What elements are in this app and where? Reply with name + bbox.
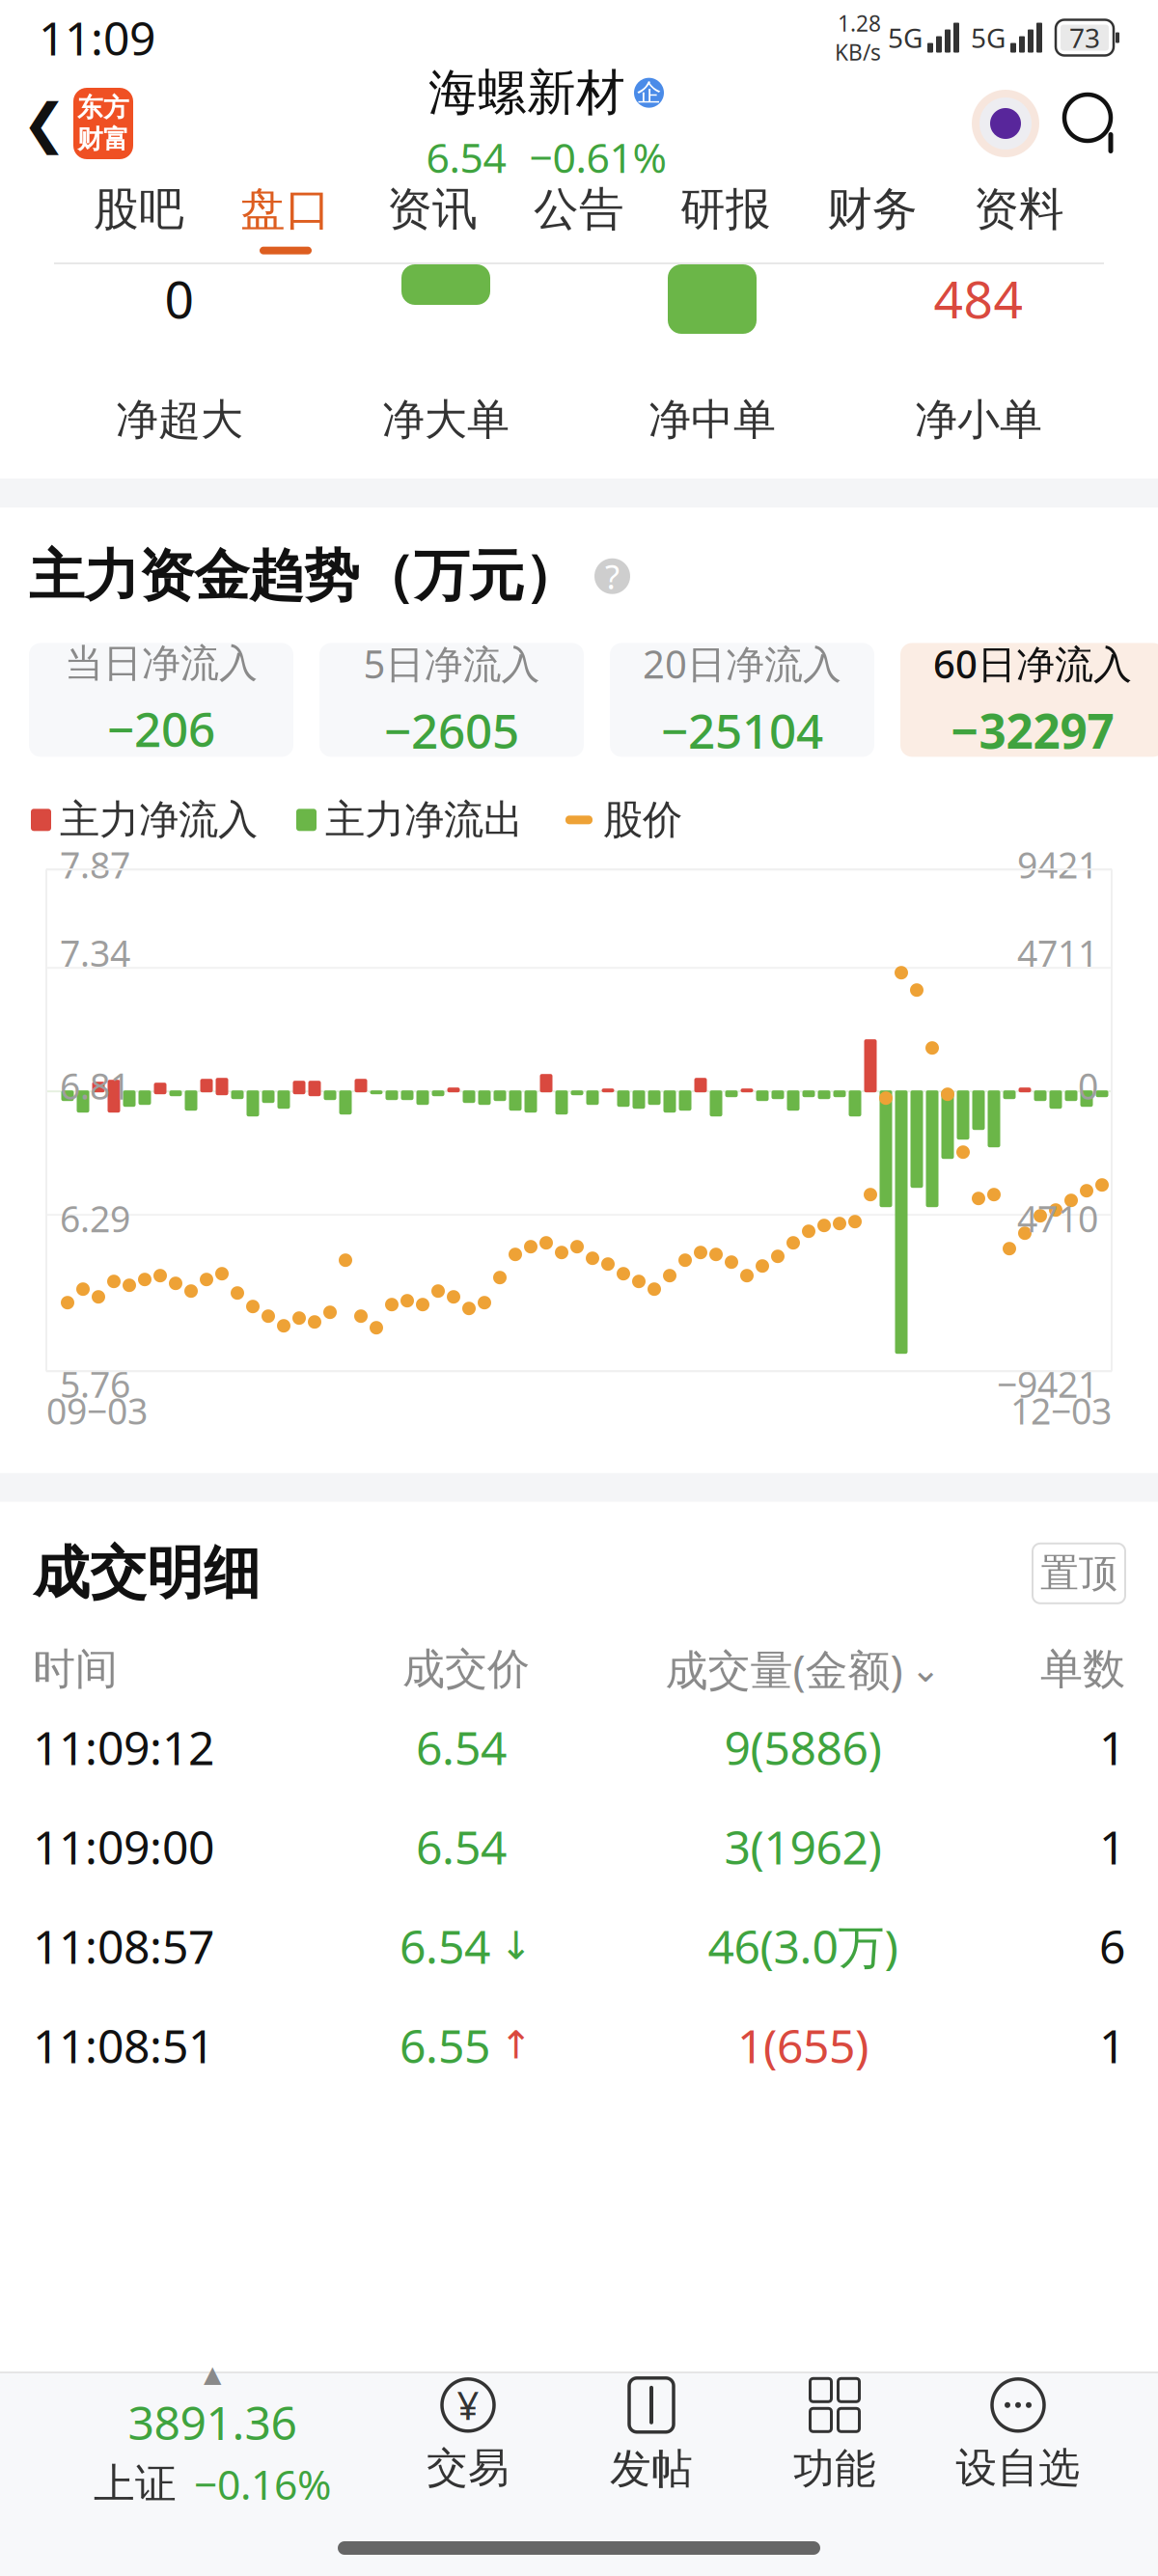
button[interactable]: 11:08:57 — [0, 1896, 1158, 1995]
staticText: ↓ — [500, 1924, 533, 1968]
staticText: 盘口 — [240, 182, 331, 237]
staticText: ❮ — [22, 93, 67, 154]
button[interactable]: 60日净流入 — [900, 643, 1158, 757]
button[interactable]: 成交量(金额) — [658, 1641, 948, 1697]
staticText: 484 — [934, 264, 1023, 333]
staticText: 财务 — [827, 182, 918, 237]
button[interactable]: 股吧 — [66, 172, 212, 264]
button[interactable]: 置顶 — [1033, 1543, 1125, 1603]
staticText: 12−03 — [1010, 1387, 1112, 1434]
staticText: 1(655) — [737, 2014, 868, 2076]
staticText: 09−03 — [46, 1387, 148, 1434]
button[interactable]: 公告 — [506, 172, 652, 264]
button[interactable]: 财务 — [799, 172, 946, 264]
button[interactable]: 5日净流入 — [319, 643, 584, 757]
staticText: 3(1962) — [724, 1816, 882, 1877]
staticText: 6 — [1099, 1915, 1125, 1976]
staticText: 20日净流入 — [643, 638, 841, 689]
staticText: 5G — [888, 20, 923, 56]
staticText: ¥ — [457, 2379, 479, 2431]
staticText: 研报 — [680, 182, 771, 237]
staticText: 发帖 — [610, 2444, 693, 2494]
staticText: −0.61% — [529, 130, 666, 184]
staticText: 73 — [1069, 20, 1100, 56]
staticText: 46(3.0万) — [708, 1915, 898, 1976]
button[interactable]: 设自选 — [926, 2373, 1110, 2499]
staticText: 净超大 — [116, 394, 243, 446]
staticText: 企 — [637, 78, 661, 108]
staticText: −2605 — [384, 699, 519, 762]
staticText: 5日净流入 — [363, 638, 540, 689]
button[interactable]: 东方财富首页 — [73, 88, 133, 159]
staticText: 11:09:00 — [33, 1816, 214, 1877]
staticText: 7.34 — [60, 929, 130, 977]
staticText: 1 — [1099, 2014, 1125, 2076]
staticText: 置顶 — [1040, 1550, 1117, 1597]
staticText: 东方 — [77, 92, 129, 123]
button[interactable]: ¥ — [376, 2373, 560, 2499]
button[interactable]: 资料 — [946, 172, 1092, 264]
staticText: 净小单 — [915, 394, 1042, 446]
staticText: 3891.36 — [128, 2391, 297, 2453]
staticText: 6.54 — [416, 1716, 507, 1778]
button[interactable]: 研报 — [652, 172, 799, 264]
button[interactable]: 11:09:12 — [0, 1697, 1158, 1797]
staticText: 主力资金趋势（万元） — [29, 542, 579, 610]
button[interactable]: 11:08:51 — [0, 1995, 1158, 2095]
staticText: −25104 — [661, 699, 823, 762]
staticText: KB/s — [835, 38, 881, 67]
staticText: ▲ — [204, 2361, 221, 2387]
staticText: 4711 — [1017, 929, 1098, 977]
staticText: 时间 — [33, 1643, 118, 1695]
staticText: 6.54 — [416, 1816, 507, 1877]
staticText: 股价 — [603, 795, 682, 844]
button[interactable]: 智能助手 — [959, 75, 1052, 172]
staticText: ⌄ — [910, 1649, 940, 1690]
staticText: 11:08:51 — [33, 2014, 214, 2076]
staticText: 功能 — [793, 2444, 876, 2494]
staticText: 11:08:57 — [33, 1915, 214, 1976]
button[interactable]: 搜索 — [1052, 75, 1135, 172]
staticText: 5G — [971, 20, 1006, 56]
staticText: 6.54 — [400, 1915, 490, 1976]
staticText: 交易 — [427, 2443, 510, 2493]
staticText: 成交价 — [402, 1643, 530, 1695]
staticText: 9421 — [1017, 841, 1098, 888]
button[interactable]: 20日净流入 — [610, 643, 874, 757]
button[interactable]: 说明 — [594, 558, 630, 594]
button[interactable]: 返回 — [15, 75, 73, 172]
staticText: 7.87 — [60, 841, 130, 888]
staticText: −32297 — [951, 699, 1114, 762]
button[interactable]: 功能 — [743, 2373, 926, 2499]
staticText: 1 — [1099, 1716, 1125, 1778]
staticText: 资料 — [974, 182, 1064, 237]
staticText: 上证 — [94, 2459, 177, 2509]
staticText: 股吧 — [94, 182, 184, 237]
staticText: 0 — [165, 264, 194, 333]
staticText: 财富 — [77, 123, 129, 155]
staticText: 成交量(金额) — [665, 1641, 903, 1697]
staticText: 1 — [1099, 1816, 1125, 1877]
button[interactable]: 发帖 — [560, 2373, 743, 2499]
staticText: 6.54 — [426, 130, 506, 184]
button[interactable]: ▲ — [48, 2373, 376, 2499]
staticText: −206 — [107, 697, 215, 760]
staticText: 0 — [1078, 1062, 1098, 1110]
button[interactable]: 当日净流入 — [29, 643, 293, 757]
button[interactable]: 11:09:00 — [0, 1797, 1158, 1896]
staticText: 11:09 — [39, 7, 155, 68]
staticText: 4710 — [1017, 1194, 1098, 1242]
staticText: 净大单 — [382, 394, 510, 446]
staticText: ? — [605, 554, 620, 598]
staticText: ↑ — [500, 2023, 533, 2067]
button[interactable]: 资讯 — [359, 172, 506, 264]
staticText: 净中单 — [648, 394, 776, 446]
staticText: 单数 — [1040, 1643, 1125, 1695]
staticText: 6.81 — [60, 1062, 130, 1110]
staticText: 5.76 — [60, 1360, 130, 1408]
button[interactable]: 盘口 — [212, 172, 359, 264]
staticText: 9(5886) — [724, 1716, 882, 1778]
staticText: 公告 — [534, 182, 624, 237]
staticText: −0.16% — [194, 2457, 331, 2511]
staticText: 设自选 — [956, 2443, 1080, 2493]
